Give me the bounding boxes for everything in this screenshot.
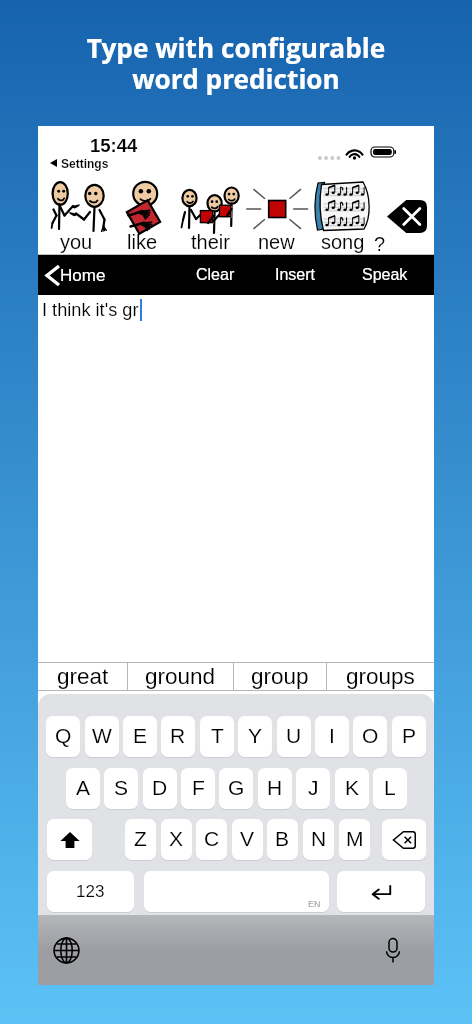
- button[interactable]: O: [353, 716, 387, 757]
- staticText: 123: [76, 882, 105, 901]
- staticText: EN: [308, 899, 321, 909]
- button[interactable]: H: [258, 768, 292, 809]
- button[interactable]: P: [392, 716, 426, 757]
- button[interactable]: shift: [47, 819, 92, 860]
- button[interactable]: new: [243, 172, 309, 254]
- button[interactable]: L: [373, 768, 407, 809]
- staticText: B: [275, 827, 290, 850]
- staticText: T: [211, 724, 224, 747]
- staticText: Speak: [362, 266, 408, 284]
- button[interactable]: Dictation: [378, 935, 408, 965]
- button[interactable]: C: [196, 819, 227, 860]
- button[interactable]: E: [123, 716, 157, 757]
- button[interactable]: J: [296, 768, 330, 809]
- staticText: M: [346, 827, 364, 850]
- staticText: P: [402, 724, 417, 747]
- button[interactable]: like: [109, 172, 175, 254]
- staticText: J: [308, 776, 319, 799]
- staticText: Q: [55, 724, 72, 747]
- button[interactable]: Y: [238, 716, 272, 757]
- staticText: groups: [346, 664, 415, 689]
- button[interactable]: great: [38, 662, 127, 691]
- button[interactable]: T: [200, 716, 234, 757]
- staticText: C: [204, 827, 220, 850]
- staticText: ?: [374, 233, 386, 255]
- button[interactable]: N: [303, 819, 334, 860]
- staticText: I: [329, 724, 335, 747]
- staticText: H: [267, 776, 283, 799]
- button[interactable]: U: [277, 716, 311, 757]
- staticText: G: [228, 776, 245, 799]
- button[interactable]: G: [219, 768, 253, 809]
- button[interactable]: K: [335, 768, 369, 809]
- button[interactable]: D: [143, 768, 177, 809]
- button[interactable]: space: [144, 871, 329, 912]
- button[interactable]: 123: [47, 871, 134, 912]
- staticText: you: [60, 231, 93, 253]
- button[interactable]: V: [232, 819, 263, 860]
- button[interactable]: Speak: [345, 255, 425, 295]
- button[interactable]: I: [315, 716, 349, 757]
- button[interactable]: return: [337, 871, 425, 912]
- button[interactable]: backspace: [382, 819, 426, 860]
- button[interactable]: their: [177, 172, 243, 254]
- button[interactable]: Q: [46, 716, 80, 757]
- button[interactable]: Clear: [175, 255, 255, 295]
- staticText: song: [321, 231, 365, 253]
- staticText: Home: [60, 266, 106, 285]
- button[interactable]: A: [66, 768, 100, 809]
- button[interactable]: Insert: [255, 255, 335, 295]
- staticText: L: [384, 776, 396, 799]
- button[interactable]: I think it's gr: [38, 295, 434, 662]
- staticText: 15:44: [90, 135, 138, 156]
- staticText: new: [258, 231, 295, 253]
- button[interactable]: W: [85, 716, 119, 757]
- button[interactable]: Settings: [50, 156, 109, 170]
- staticText: ground: [145, 664, 216, 689]
- button[interactable]: groups: [326, 662, 434, 691]
- staticText: U: [286, 724, 302, 747]
- staticText: group: [251, 664, 309, 689]
- button[interactable]: F: [181, 768, 215, 809]
- staticText: O: [362, 724, 379, 747]
- staticText: E: [133, 724, 148, 747]
- button[interactable]: ground: [127, 662, 233, 691]
- staticText: Settings: [61, 157, 109, 170]
- staticText: D: [152, 776, 168, 799]
- button[interactable]: Change keyboard: [51, 935, 81, 965]
- staticText: F: [192, 776, 205, 799]
- staticText: W: [92, 724, 112, 747]
- button[interactable]: R: [161, 716, 195, 757]
- staticText: I think it's gr: [42, 300, 139, 320]
- button[interactable]: Home: [46, 255, 106, 295]
- button[interactable]: S: [104, 768, 138, 809]
- staticText: their: [191, 231, 230, 253]
- staticText: Y: [248, 724, 263, 747]
- button[interactable]: B: [267, 819, 298, 860]
- button[interactable]: you: [43, 172, 109, 254]
- staticText: great: [57, 664, 109, 689]
- button[interactable]: Delete: [387, 200, 427, 233]
- staticText: Type with configurable word prediction: [0, 30, 472, 97]
- staticText: Z: [134, 827, 147, 850]
- staticText: Insert: [275, 266, 316, 284]
- staticText: V: [240, 827, 255, 850]
- staticText: Clear: [196, 266, 235, 284]
- staticText: S: [114, 776, 129, 799]
- staticText: like: [127, 231, 158, 253]
- button[interactable]: song: [310, 172, 376, 254]
- button[interactable]: M: [339, 819, 370, 860]
- staticText: A: [76, 776, 91, 799]
- button[interactable]: group: [233, 662, 326, 691]
- button[interactable]: X: [161, 819, 192, 860]
- staticText: R: [170, 724, 186, 747]
- staticText: X: [169, 827, 184, 850]
- button[interactable]: Z: [125, 819, 156, 860]
- staticText: N: [311, 827, 327, 850]
- staticText: K: [345, 776, 360, 799]
